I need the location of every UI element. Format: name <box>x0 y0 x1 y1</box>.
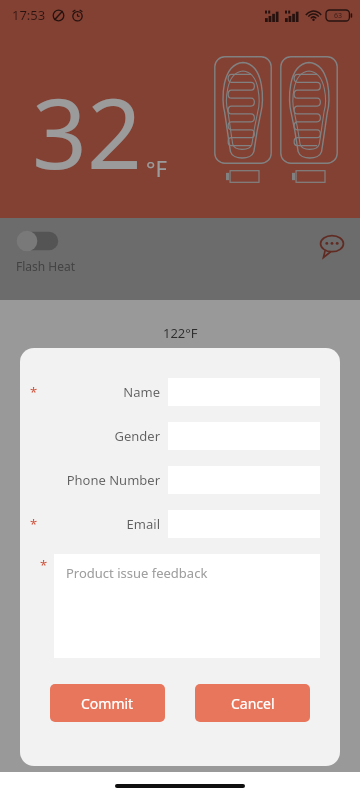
staticText: Phone Number <box>66 471 160 489</box>
staticText: 122°F <box>163 324 198 342</box>
staticText: Product issue feedback <box>66 564 208 582</box>
staticText: Gender <box>114 427 160 445</box>
staticText: 63 <box>334 11 343 21</box>
staticText: * <box>30 383 38 401</box>
staticText: * <box>40 556 48 574</box>
staticText: 32 <box>32 66 142 197</box>
staticText: 17:53 <box>12 6 46 24</box>
button[interactable]: Feedback <box>316 230 348 262</box>
staticText: * <box>30 515 38 533</box>
staticText: Email <box>126 515 160 533</box>
staticText: Flash Heat <box>16 258 76 274</box>
staticText: 32 <box>32 66 142 197</box>
button[interactable]: Flash Heat <box>14 228 78 276</box>
staticText: 63 <box>334 11 343 21</box>
button[interactable]: Cancel <box>195 684 310 722</box>
staticText: Name <box>123 383 160 401</box>
staticText: Commit <box>81 694 134 713</box>
staticText: °F <box>146 153 167 183</box>
button[interactable]: Product issue feedback <box>54 554 320 658</box>
staticText: Cancel <box>231 694 275 713</box>
staticText: 17:53 <box>12 6 46 24</box>
staticText: °F <box>146 153 167 183</box>
button[interactable]: Commit <box>50 684 165 722</box>
